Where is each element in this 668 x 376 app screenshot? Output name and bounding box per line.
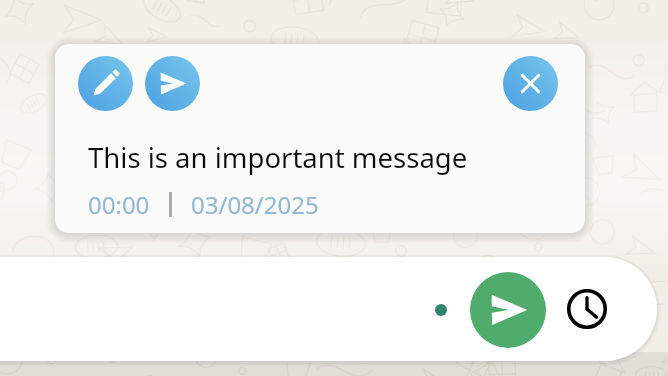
staticText: This is an important message [88,139,468,176]
button[interactable]: Send [470,272,546,348]
staticText: 00:00 [88,188,150,221]
button[interactable]: Close [503,56,558,111]
button[interactable]: Edit [55,44,585,233]
staticText: 03/08/2025 [191,188,319,221]
button[interactable]: Schedule [563,285,611,333]
button[interactable]: Send now [145,56,200,111]
button[interactable]: Edit [78,56,133,111]
